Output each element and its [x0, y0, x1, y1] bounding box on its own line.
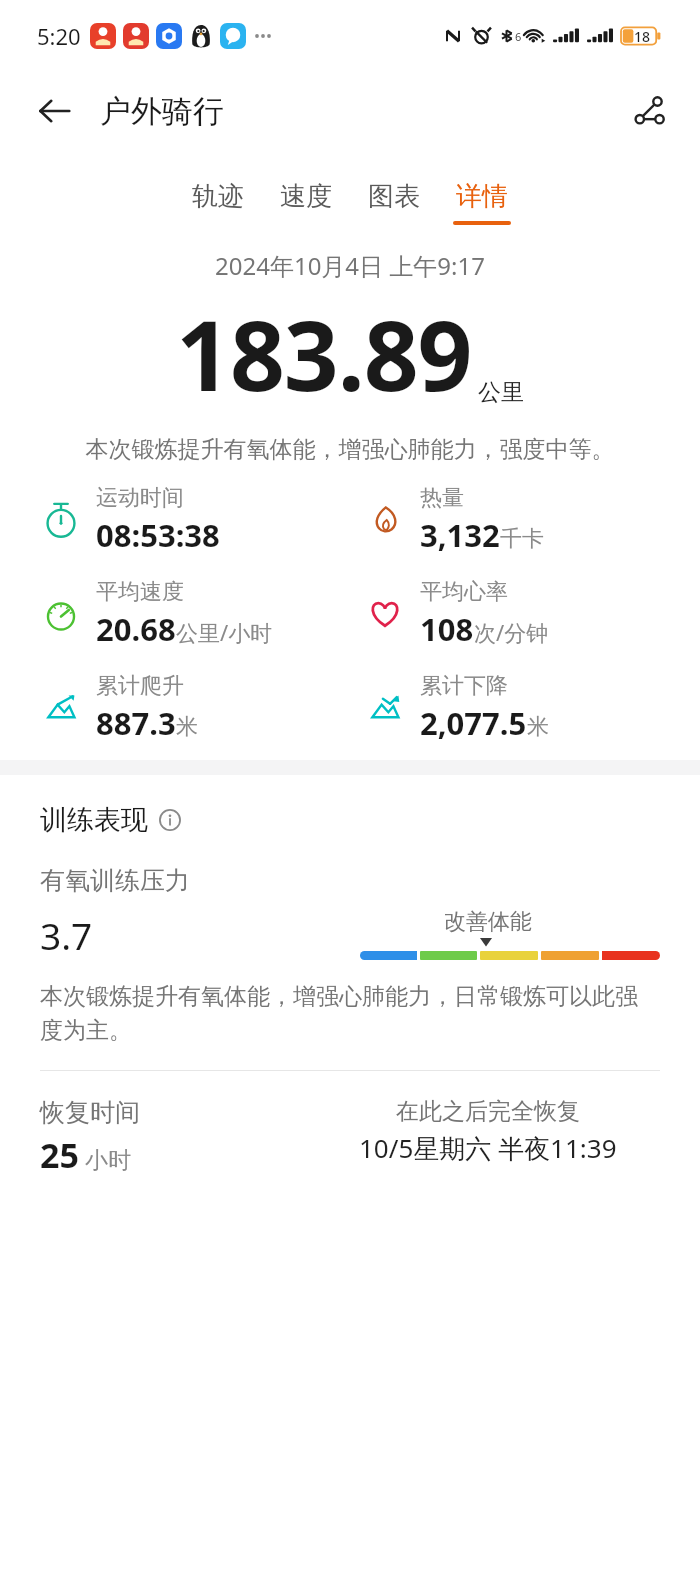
- staticText: 累计爬升: [96, 672, 184, 700]
- staticText: 米: [176, 713, 198, 741]
- staticText: 次/分钟: [474, 617, 549, 647]
- staticText: 108: [420, 608, 474, 650]
- staticText: 5:20: [37, 21, 81, 51]
- staticText: 2,077.5: [420, 702, 527, 744]
- button[interactable]: 平均心率: [364, 578, 549, 650]
- staticText: 3,132: [420, 514, 500, 556]
- staticText: 轨迹: [192, 180, 244, 213]
- button[interactable]: 图表: [359, 178, 429, 227]
- button[interactable]: 速度: [271, 178, 341, 227]
- button[interactable]: 轨迹: [183, 178, 253, 227]
- staticText: 08:53:38: [96, 514, 220, 556]
- staticText: 公里: [478, 378, 524, 407]
- button[interactable]: 详情: [447, 178, 517, 227]
- button[interactable]: 累计下降: [364, 672, 549, 744]
- staticText: 2024年10月4日 上午9:17: [215, 249, 485, 282]
- staticText: 累计下降: [420, 672, 508, 700]
- staticText: 详情: [456, 180, 508, 213]
- staticText: 训练表现: [40, 803, 148, 837]
- staticText: 运动时间: [96, 484, 184, 512]
- staticText: 千卡: [500, 525, 544, 553]
- staticText: 米: [527, 713, 549, 741]
- staticText: 183.89: [176, 288, 472, 419]
- staticText: 速度: [280, 180, 332, 213]
- button[interactable]: 平均速度: [40, 578, 273, 650]
- button[interactable]: 运动时间: [40, 484, 220, 556]
- button[interactable]: 热量: [364, 484, 544, 556]
- button[interactable]: 训练表现: [40, 803, 182, 837]
- staticText: 887.3: [96, 702, 176, 744]
- staticText: 本次锻炼提升有氧体能，增强心肺能力，强度中等。: [26, 435, 674, 464]
- staticText: 恢复时间: [40, 1097, 140, 1128]
- staticText: 图表: [368, 180, 420, 213]
- staticText: 平均速度: [96, 578, 184, 606]
- staticText: 18: [634, 27, 651, 46]
- button[interactable]: Back: [28, 85, 80, 137]
- staticText: 户外骑行: [100, 92, 224, 131]
- staticText: 20.68: [96, 608, 176, 650]
- staticText: 在此之后完全恢复: [396, 1097, 580, 1126]
- button[interactable]: Share: [622, 83, 678, 139]
- staticText: 公里/小时: [176, 617, 273, 647]
- staticText: 3.7: [40, 910, 93, 960]
- staticText: 小时: [85, 1146, 131, 1175]
- staticText: 6: [515, 29, 522, 44]
- staticText: 本次锻炼提升有氧体能，增强心肺能力，日常锻炼可以此强度为主。: [40, 982, 660, 1044]
- staticText: 热量: [420, 484, 464, 512]
- staticText: 改善体能: [444, 908, 532, 936]
- staticText: 25: [40, 1132, 79, 1178]
- button[interactable]: 累计爬升: [40, 672, 198, 744]
- staticText: 有氧训练压力: [40, 865, 190, 896]
- staticText: 10/5星期六 半夜11:39: [359, 1130, 617, 1166]
- staticText: 平均心率: [420, 578, 508, 606]
